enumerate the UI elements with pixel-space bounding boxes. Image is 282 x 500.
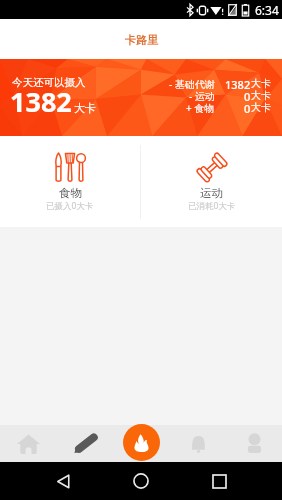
button[interactable]: 食物 bbox=[0, 136, 140, 227]
button[interactable]: Recents bbox=[204, 466, 234, 496]
button[interactable]: Calories bbox=[123, 424, 160, 461]
staticText: + 食物 bbox=[186, 101, 215, 113]
staticText: 卡路里 bbox=[125, 33, 158, 47]
button[interactable]: Home bbox=[126, 466, 156, 496]
staticText: 运动 bbox=[200, 186, 223, 200]
staticText: 今天还可以摄入 bbox=[12, 76, 86, 89]
staticText: 大卡 bbox=[251, 77, 271, 89]
staticText: 6:34 bbox=[255, 2, 279, 18]
staticText: 大卡 bbox=[251, 101, 271, 113]
button[interactable]: Home bbox=[0, 425, 57, 462]
button[interactable]: 运动 bbox=[141, 136, 282, 227]
button[interactable]: Notifications bbox=[170, 425, 226, 462]
staticText: 已消耗0大卡 bbox=[188, 200, 236, 212]
staticText: - 运动 bbox=[189, 89, 215, 101]
staticText: 0 bbox=[244, 101, 251, 113]
staticText: 大卡 bbox=[251, 89, 271, 101]
button[interactable]: Profile bbox=[226, 425, 282, 462]
staticText: 食物 bbox=[59, 186, 82, 200]
staticText: - 基础代谢 bbox=[169, 77, 215, 89]
button[interactable]: Edit bbox=[57, 425, 114, 462]
staticText: 已摄入0大卡 bbox=[46, 200, 94, 212]
staticText: 大卡 bbox=[74, 101, 96, 115]
button[interactable]: Back bbox=[48, 466, 78, 496]
staticText: 1382 bbox=[225, 77, 251, 89]
staticText: 0 bbox=[244, 89, 251, 101]
staticText: 1382 bbox=[10, 83, 72, 120]
